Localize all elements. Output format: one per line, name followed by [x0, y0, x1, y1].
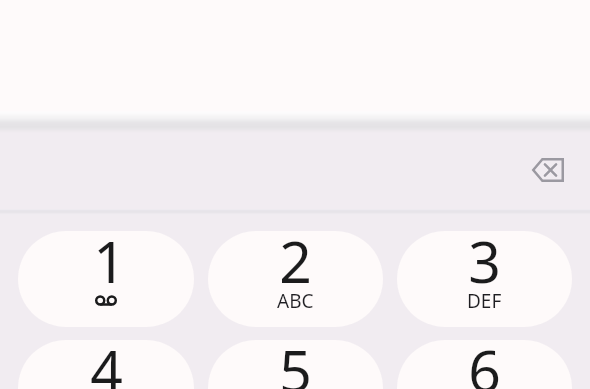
staticText: 4	[90, 340, 123, 389]
button[interactable]: 1	[18, 231, 194, 327]
button[interactable]: 3	[397, 231, 572, 327]
staticText: DEF	[467, 288, 502, 314]
button[interactable]: 2	[208, 231, 383, 327]
button[interactable]: 6	[397, 340, 572, 389]
button[interactable]: 5	[208, 340, 383, 389]
staticText: 5	[279, 340, 312, 389]
staticText: ABC	[277, 288, 314, 314]
staticText: 6	[468, 340, 501, 389]
button[interactable]: 4	[18, 340, 194, 389]
button[interactable]: Backspace	[524, 146, 572, 194]
staticText: 1	[93, 231, 126, 300]
staticText: 2	[279, 231, 312, 300]
staticText: 3	[468, 231, 501, 300]
